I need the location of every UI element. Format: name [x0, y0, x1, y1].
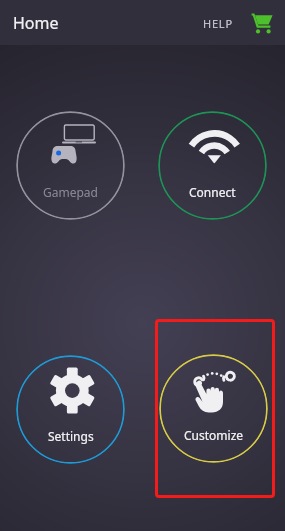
staticText: Settings	[48, 428, 94, 444]
button[interactable]: Cart	[244, 5, 280, 41]
button[interactable]: Customize	[159, 354, 268, 463]
staticText: HELP	[203, 16, 233, 31]
staticText: Customize	[184, 427, 244, 443]
staticText: Connect	[189, 184, 236, 200]
staticText: Gamepad	[43, 184, 98, 200]
button[interactable]: Settings	[16, 355, 125, 464]
button[interactable]: Connect	[158, 111, 267, 220]
staticText: Home	[13, 12, 59, 34]
button[interactable]: Gamepad	[16, 111, 125, 220]
button[interactable]: HELP	[193, 6, 243, 41]
